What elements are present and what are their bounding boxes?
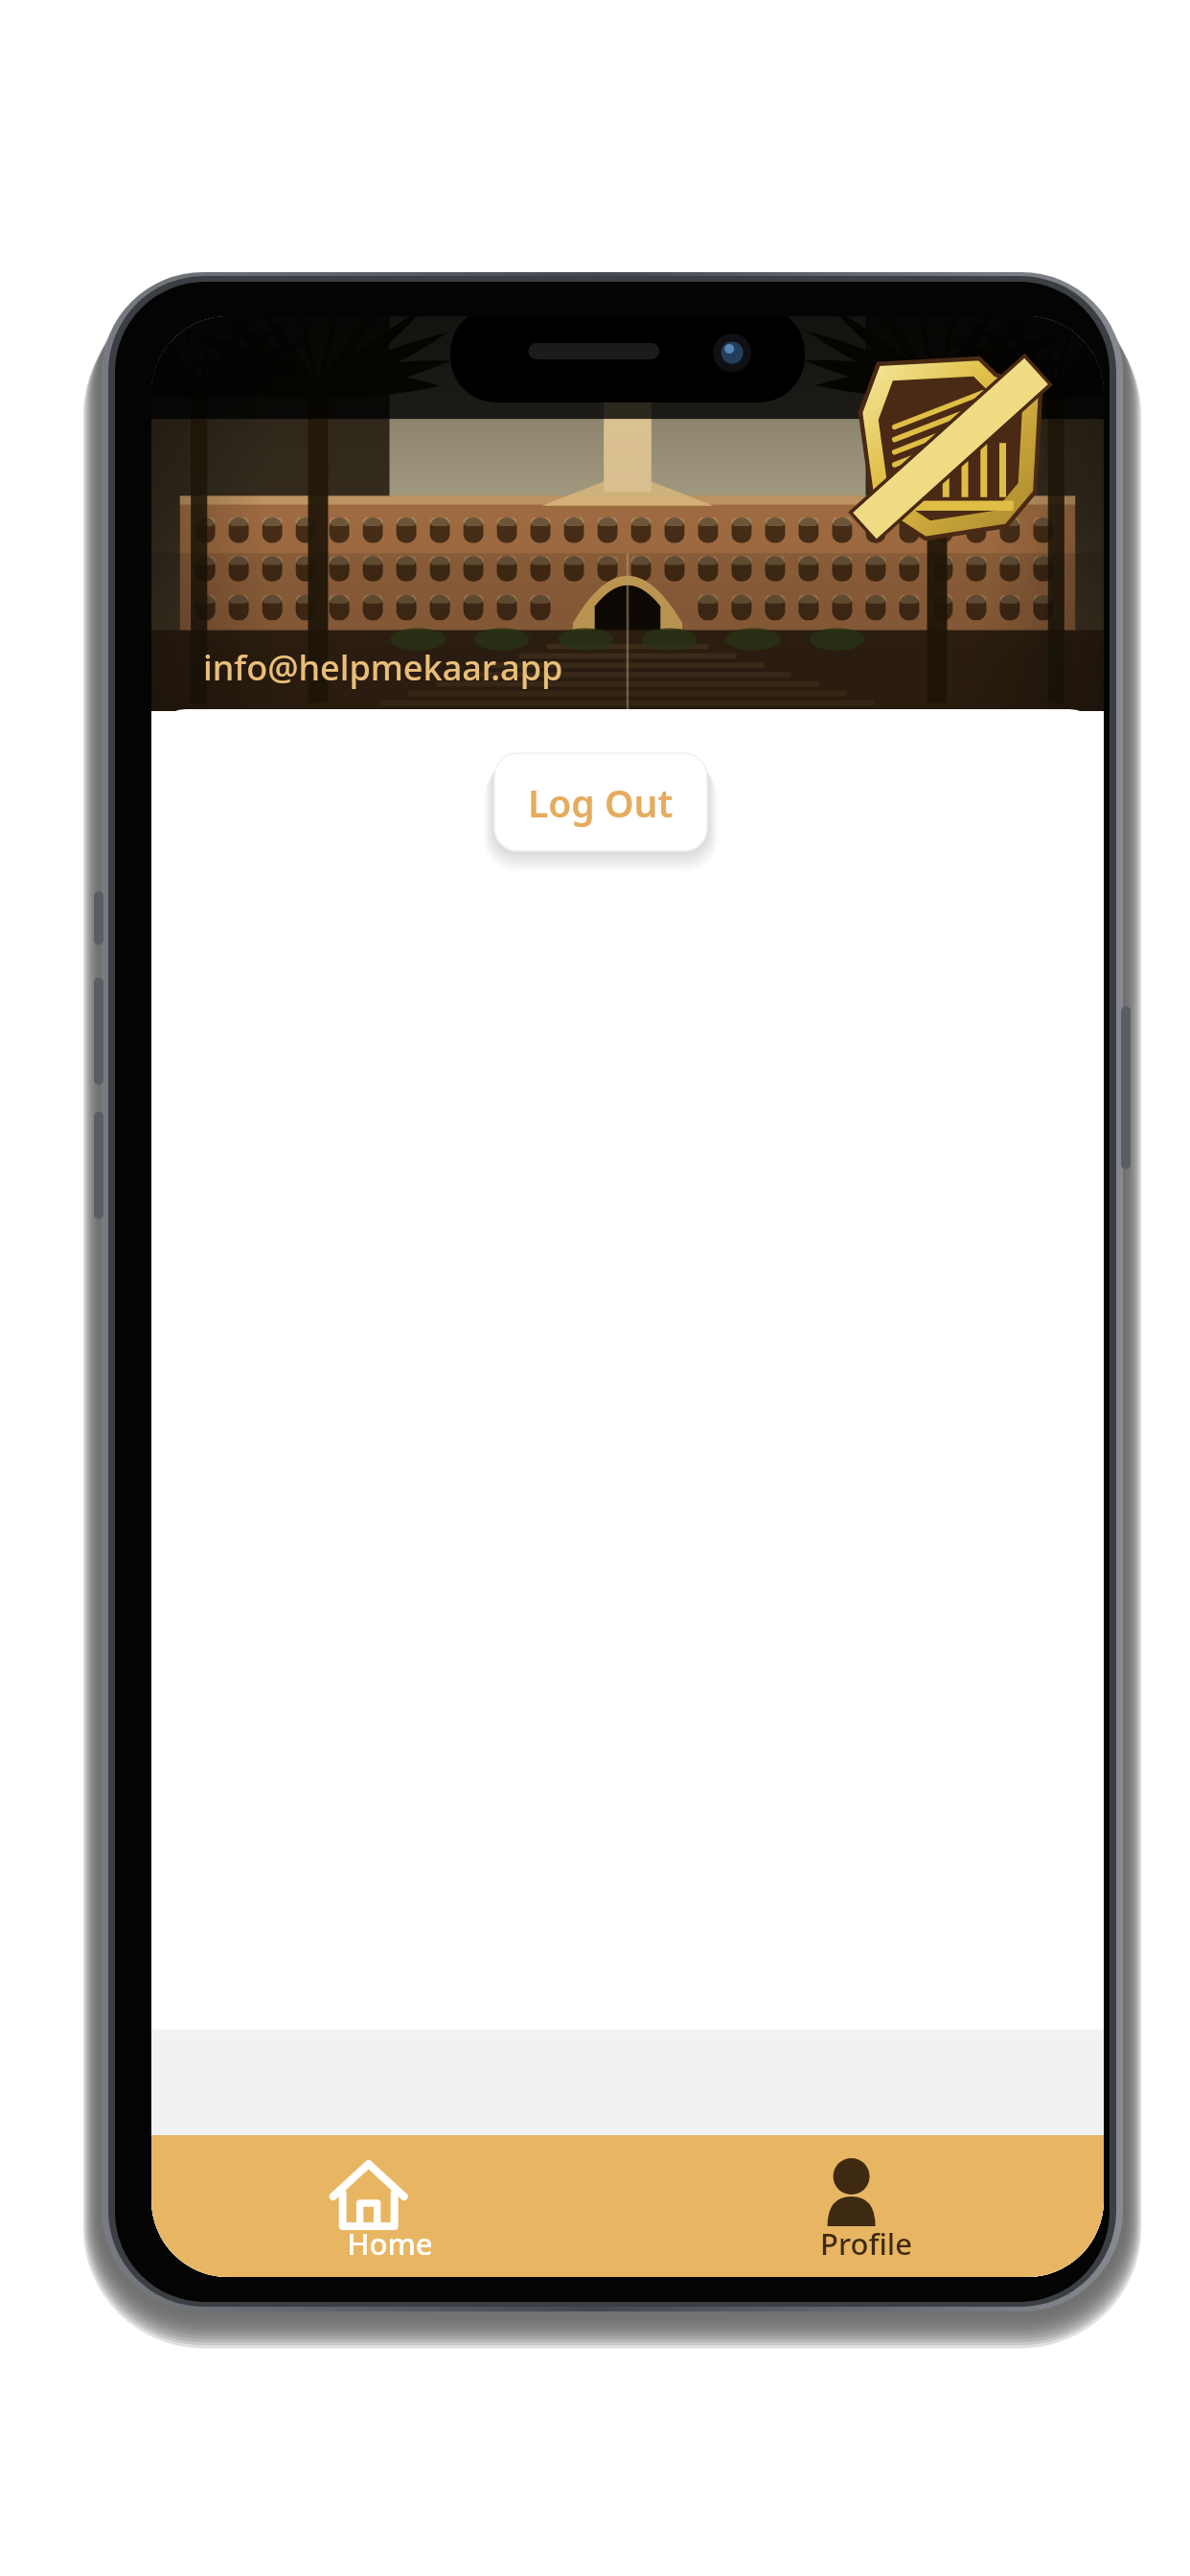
button[interactable]: Profile — [628, 2135, 1104, 2277]
button[interactable]: Log Out — [494, 753, 707, 851]
staticText: Profile — [820, 2223, 912, 2264]
button[interactable]: Home — [151, 2135, 628, 2277]
staticText: Home — [347, 2223, 433, 2264]
staticText: info@helpmekaar.app — [203, 644, 563, 691]
staticText: Log Out — [528, 777, 674, 828]
